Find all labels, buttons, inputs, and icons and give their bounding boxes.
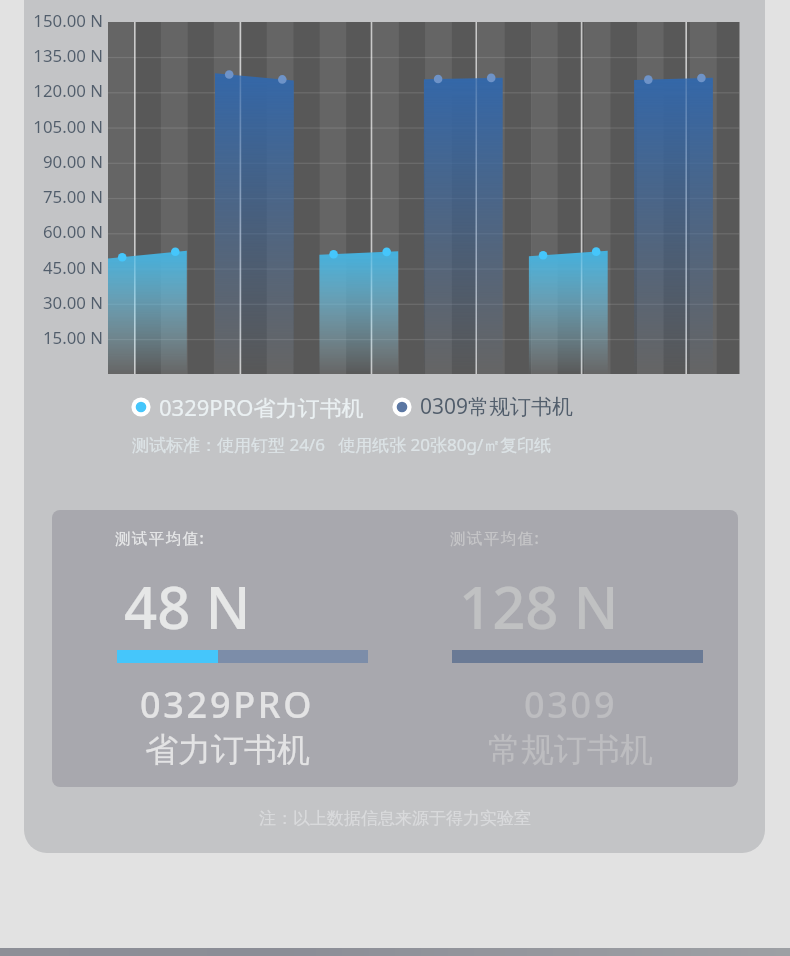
staticText: 常规订书机 xyxy=(488,729,653,771)
staticText: 150.00 N xyxy=(0,9,103,32)
staticText: 48 N xyxy=(124,567,251,646)
button[interactable]: 0329PRO省力订书机 xyxy=(130,392,364,422)
staticText: 90.00 N xyxy=(0,150,103,173)
staticText: 128 N xyxy=(459,567,619,646)
staticText: 0309 xyxy=(524,680,618,729)
staticText: 0329PRO省力订书机 xyxy=(159,392,364,422)
staticText: 注：以上数据信息来源于得力实验室 xyxy=(259,808,531,829)
staticText: 15.00 N xyxy=(0,326,103,349)
staticText: 省力订书机 xyxy=(145,729,310,771)
staticText: 135.00 N xyxy=(0,44,103,67)
staticText: 测试标准：使用钉型 24/6 使用纸张 20张80g/㎡复印纸 xyxy=(132,433,552,456)
staticText: 60.00 N xyxy=(0,220,103,243)
staticText: 30.00 N xyxy=(0,291,103,314)
button[interactable]: 0309常规订书机 xyxy=(391,392,574,421)
staticText: 105.00 N xyxy=(0,115,103,138)
staticText: 45.00 N xyxy=(0,256,103,279)
staticText: 75.00 N xyxy=(0,185,103,208)
staticText: 120.00 N xyxy=(0,79,103,102)
staticText: 0309常规订书机 xyxy=(420,392,574,421)
staticText: 测试平均值: xyxy=(450,527,541,548)
staticText: 0329PRO xyxy=(140,680,315,729)
staticText: 测试平均值: xyxy=(115,527,206,548)
